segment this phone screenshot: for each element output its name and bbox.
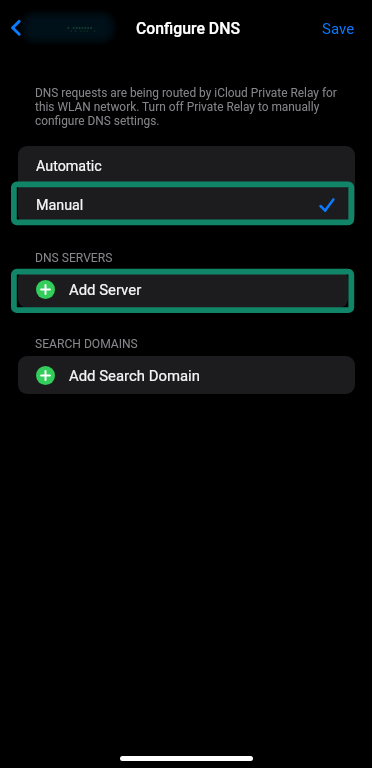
staticText: SEARCH DOMAINS (35, 337, 138, 351)
button[interactable]: Automatic (18, 147, 355, 186)
staticText: Add Search Domain (69, 367, 200, 384)
staticText: Add Server (69, 281, 142, 298)
staticText: Automatic (36, 158, 102, 175)
staticText: Save (322, 20, 355, 38)
button[interactable]: Back (0, 8, 36, 48)
staticText: DNS SERVERS (35, 251, 113, 265)
button[interactable]: Manual (18, 186, 355, 224)
button[interactable]: Add Search Domain (18, 356, 355, 394)
staticText: DNS requests are being routed by iCloud … (35, 86, 345, 128)
staticText: Manual (36, 197, 84, 214)
button[interactable]: Add Server (18, 270, 348, 308)
button[interactable]: Save (310, 13, 367, 45)
staticText: Configure DNS (136, 19, 240, 38)
